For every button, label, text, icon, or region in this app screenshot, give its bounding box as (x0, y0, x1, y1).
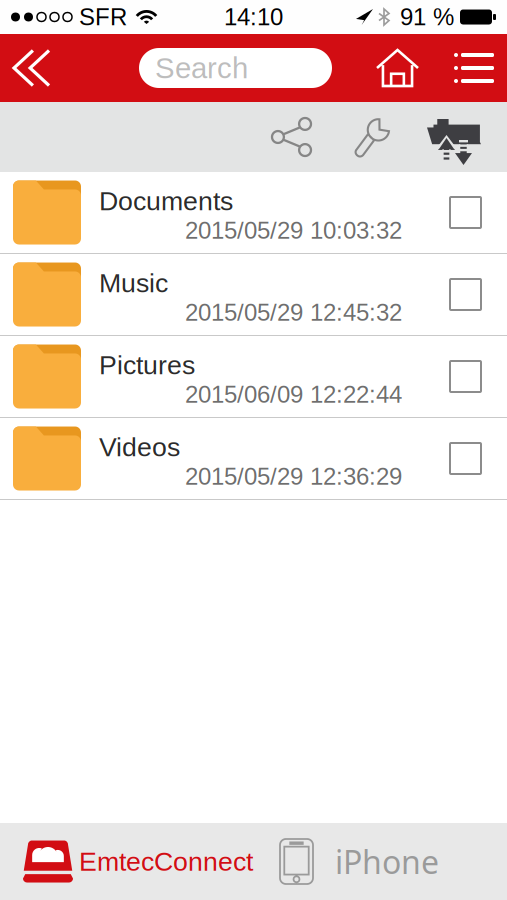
staticText: 91 % (400, 4, 454, 30)
button[interactable]: Back (0, 34, 139, 102)
staticText: Music (99, 268, 168, 298)
staticText: Videos (99, 432, 180, 462)
staticText: Search (155, 52, 248, 84)
button[interactable]: iPhone (253, 823, 439, 900)
button[interactable]: Home (354, 34, 440, 102)
staticText: 2015/05/29 12:45:32 (185, 299, 402, 326)
button[interactable]: Videos (0, 418, 507, 500)
staticText: EmtecConnect (79, 847, 253, 876)
staticText: Documents (99, 186, 233, 216)
button[interactable]: Menu (440, 34, 507, 102)
staticText: 14:10 (224, 4, 283, 30)
button[interactable]: Transfer (427, 102, 507, 172)
button[interactable]: Pictures (0, 336, 507, 418)
staticText: 2015/06/09 12:22:44 (185, 381, 402, 408)
button[interactable]: Documents (0, 172, 507, 254)
button[interactable]: Tools (353, 102, 427, 172)
button[interactable]: Music (0, 254, 507, 336)
staticText: iPhone (335, 840, 439, 883)
button[interactable]: Share (251, 102, 353, 172)
button[interactable]: EmtecConnect (0, 823, 253, 900)
button[interactable]: Search (139, 48, 332, 88)
staticText: Pictures (99, 350, 195, 380)
staticText: 2015/05/29 12:36:29 (185, 463, 402, 490)
staticText: 2015/05/29 10:03:32 (185, 217, 402, 244)
staticText: SFR (79, 4, 127, 30)
